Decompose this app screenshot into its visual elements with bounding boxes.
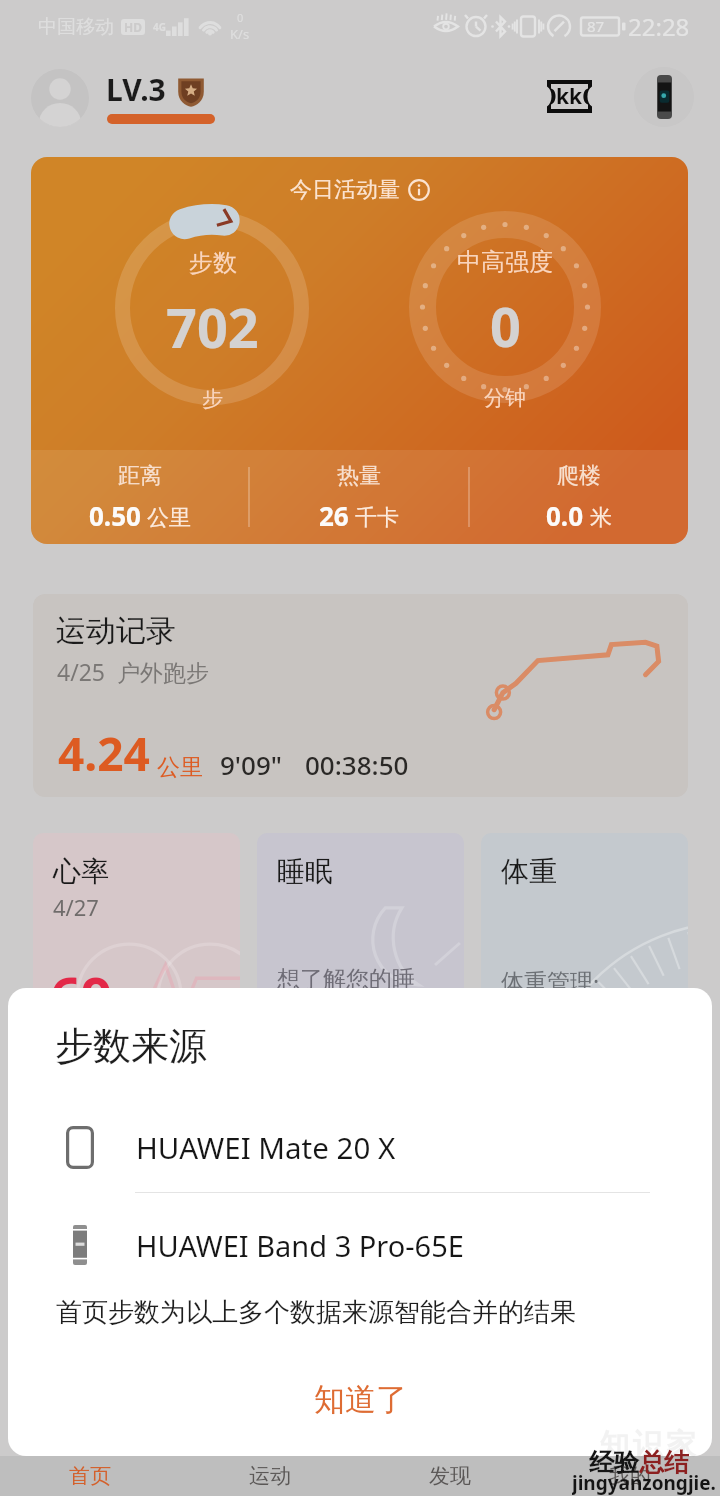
staticText: 公里 xyxy=(157,753,203,782)
button[interactable]: 首页 xyxy=(0,1456,180,1496)
button[interactable]: Coupons xyxy=(538,72,600,120)
staticText: 我的 xyxy=(609,1463,651,1489)
staticText: jingyanzongjie.com xyxy=(572,1470,720,1496)
staticText: 4/27 xyxy=(53,892,99,922)
button[interactable]: 心率 xyxy=(33,833,240,1053)
staticText: 4G xyxy=(153,20,166,34)
staticText: 体重管理· xyxy=(501,965,600,996)
staticText: 经验 xyxy=(589,1447,639,1478)
staticText: 步数 xyxy=(189,248,237,278)
button[interactable]: 发现 xyxy=(360,1456,540,1496)
staticText: 知识家 xyxy=(598,1426,697,1464)
button[interactable]: 运动 xyxy=(180,1456,360,1496)
staticText: 知道了 xyxy=(314,1380,407,1419)
staticText: 9'09" xyxy=(220,747,282,782)
staticText: 4/25 户外跑步 xyxy=(57,656,209,687)
staticText: 0 xyxy=(490,289,521,363)
staticText: 睡眠 xyxy=(277,854,333,889)
staticText: 千卡 xyxy=(355,504,399,532)
staticText: 总结 xyxy=(639,1447,689,1478)
staticText: 体重 xyxy=(501,854,557,889)
staticText: 想了解您的睡 xyxy=(277,965,415,994)
staticText: 69 xyxy=(50,959,112,1033)
button[interactable]: HUAWEI Mate 20 X xyxy=(8,1108,712,1186)
staticText: 00:38:50 xyxy=(305,747,409,782)
staticText: kk xyxy=(556,82,583,111)
staticText: 步 xyxy=(202,386,223,412)
staticText: HD xyxy=(124,19,142,35)
button[interactable]: Profile avatar xyxy=(31,69,89,127)
staticText: 今日活动量 xyxy=(290,176,400,204)
staticText: 运动记录 xyxy=(56,612,176,650)
staticText: 分钟 xyxy=(484,385,526,411)
button[interactable]: 体重 xyxy=(481,833,688,1053)
staticText: 中国移动 xyxy=(38,15,114,39)
staticText: 心率 xyxy=(53,854,109,889)
button[interactable]: 睡眠 xyxy=(257,833,464,1053)
button[interactable]: 知道了 xyxy=(8,1366,712,1432)
staticText: 发现 xyxy=(429,1463,471,1489)
staticText: 热量 xyxy=(337,462,381,490)
staticText: K/s xyxy=(230,25,250,43)
staticText: 0.50 xyxy=(89,498,141,533)
staticText: 距离 xyxy=(118,462,162,490)
staticText: 首页 xyxy=(69,1463,111,1489)
button[interactable]: Paired device xyxy=(634,67,694,127)
staticText: 26 xyxy=(319,498,349,533)
staticText: HUAWEI Band 3 Pro-65E xyxy=(136,1226,464,1265)
staticText: 0.0 xyxy=(546,498,584,533)
button[interactable]: 今日活动量 xyxy=(31,157,688,544)
staticText: 87 xyxy=(587,16,605,36)
staticText: 中高强度 xyxy=(457,247,553,277)
staticText: 运动 xyxy=(249,1463,291,1489)
staticText: 爬楼 xyxy=(557,462,601,490)
staticText: 步数来源 xyxy=(55,1022,207,1070)
staticText: 首页步数为以上多个数据来源智能合并的结果 xyxy=(56,1296,576,1329)
staticText: 公里 xyxy=(147,504,191,532)
button[interactable]: 运动记录 xyxy=(33,594,688,797)
staticText: 0 xyxy=(237,10,244,25)
staticText: LV.3 xyxy=(106,69,166,110)
staticText: HUAWEI Mate 20 X xyxy=(136,1127,396,1167)
staticText: 4.24 xyxy=(58,722,150,785)
staticText: 22:28 xyxy=(628,10,690,43)
staticText: 米 xyxy=(590,504,612,532)
button[interactable]: 我的 xyxy=(540,1456,720,1496)
button[interactable]: HUAWEI Band 3 Pro-65E xyxy=(8,1206,712,1284)
staticText: 702 xyxy=(166,290,259,364)
